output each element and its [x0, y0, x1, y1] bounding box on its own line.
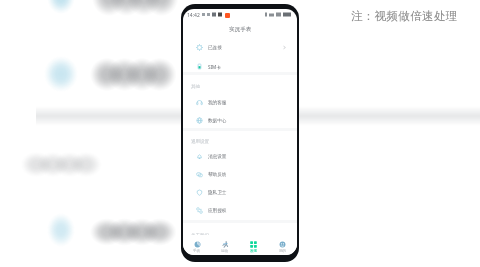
- staticText: 已连接: [208, 45, 222, 51]
- button[interactable]: 隐私卫士: [183, 184, 297, 201]
- button[interactable]: 我的: [268, 235, 297, 255]
- button[interactable]: 已连接: [183, 39, 297, 56]
- button[interactable]: 运动: [211, 235, 239, 255]
- staticText: 隐私卫士: [208, 190, 227, 196]
- staticText: 通用设置: [191, 139, 209, 145]
- button[interactable]: 手表: [183, 235, 211, 255]
- staticText: 运动: [221, 249, 229, 254]
- button[interactable]: 数据中心: [183, 112, 297, 129]
- staticText: 我的客服: [208, 100, 227, 106]
- staticText: SIM卡: [208, 64, 221, 70]
- button[interactable]: 应用授权: [183, 202, 297, 219]
- staticText: 我的: [279, 249, 287, 254]
- staticText: 其他: [191, 84, 200, 90]
- button[interactable]: 我的客服: [183, 94, 297, 111]
- staticText: 实况手表: [229, 26, 252, 33]
- staticText: 关于我们: [191, 233, 209, 239]
- staticText: 发现: [250, 249, 258, 254]
- staticText: 消息设置: [208, 154, 227, 160]
- button[interactable]: SIM卡: [183, 58, 297, 75]
- staticText: 手表: [193, 249, 201, 254]
- button[interactable]: 消息设置: [183, 148, 297, 165]
- staticText: 14:42: [187, 12, 200, 19]
- staticText: 帮助反馈: [208, 172, 227, 178]
- button[interactable]: 帮助反馈: [183, 166, 297, 183]
- staticText: 数据中心: [208, 118, 227, 124]
- button[interactable]: 发现: [239, 235, 268, 255]
- staticText: 应用授权: [208, 208, 227, 214]
- staticText: 注：视频做倍速处理: [351, 9, 458, 24]
